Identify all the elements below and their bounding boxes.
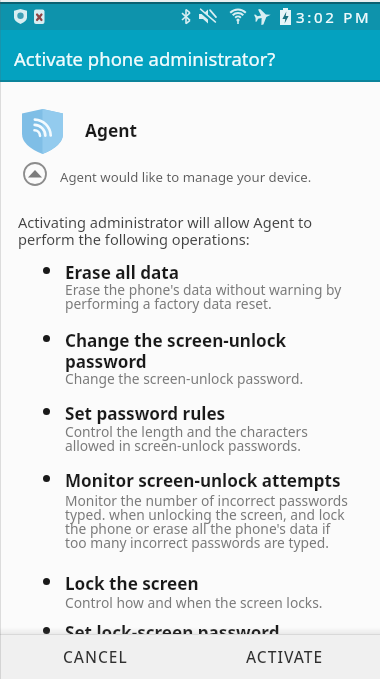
staticText: Lock the screen bbox=[65, 572, 199, 595]
button[interactable]: ACTIVATE bbox=[190, 634, 380, 679]
button[interactable] bbox=[22, 161, 48, 187]
staticText: Erase all data bbox=[65, 261, 179, 284]
staticText: Agent bbox=[85, 119, 137, 143]
staticText: 3:02 PM bbox=[296, 7, 372, 27]
staticText: Erase the phone's data without warning b… bbox=[65, 280, 342, 313]
staticText: Change the screen-unlock password bbox=[65, 329, 287, 373]
staticText: Set password rules bbox=[65, 402, 226, 425]
staticText: Monitor the number of incorrect password… bbox=[65, 491, 348, 552]
staticText: CANCEL bbox=[63, 646, 128, 667]
staticText: Control the length and the characters al… bbox=[65, 422, 308, 455]
staticText: Activating administrator will allow Agen… bbox=[18, 212, 313, 249]
staticText: Activate phone administrator? bbox=[14, 46, 276, 71]
staticText: Change the screen-unlock password. bbox=[65, 369, 304, 388]
staticText: Monitor screen-unlock attempts bbox=[65, 469, 341, 492]
staticText: Agent would like to manage your device. bbox=[60, 168, 312, 186]
staticText: Set lock-screen password bbox=[65, 621, 280, 644]
staticText: Control how and when the screen locks. bbox=[65, 593, 323, 612]
button[interactable]: CANCEL bbox=[0, 634, 190, 679]
staticText: ACTIVATE bbox=[246, 646, 324, 667]
